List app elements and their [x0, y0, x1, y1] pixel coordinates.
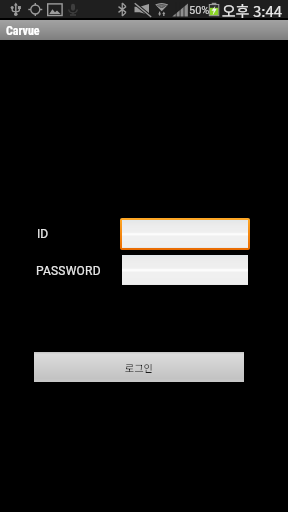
button[interactable]: [122, 220, 248, 248]
button[interactable]: 로그인: [34, 352, 244, 382]
staticText: 로그인: [125, 360, 153, 374]
staticText: ID: [37, 227, 49, 241]
staticText: 오후 3:44: [222, 0, 283, 18]
staticText: Carvue: [6, 24, 40, 38]
button[interactable]: [122, 255, 248, 285]
staticText: PASSWORD: [36, 264, 101, 278]
staticText: 50%: [189, 4, 210, 17]
